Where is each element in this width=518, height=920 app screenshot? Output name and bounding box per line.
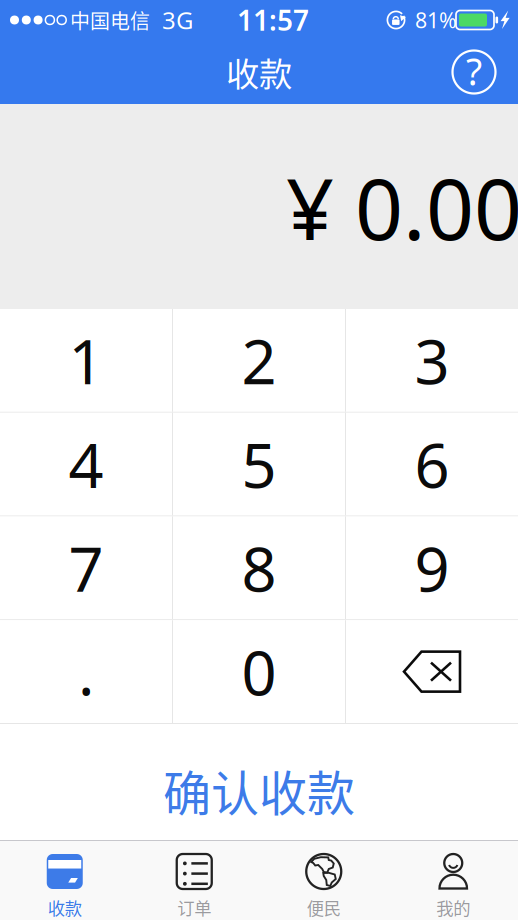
staticText: 4 xyxy=(68,423,103,505)
staticText: 订单 xyxy=(177,895,211,920)
staticText: 便民 xyxy=(307,895,341,920)
staticText: 1 xyxy=(68,320,103,401)
button[interactable]: 9 xyxy=(346,516,518,619)
staticText: 8 xyxy=(241,527,276,609)
button[interactable]: Help xyxy=(443,41,505,103)
button[interactable]: 确认收款 xyxy=(0,724,518,840)
staticText: 3G xyxy=(162,4,193,36)
staticText: 我的 xyxy=(436,895,470,920)
staticText: 确认收款 xyxy=(163,755,355,825)
button[interactable]: 订单 xyxy=(129,841,259,920)
staticText: 7 xyxy=(68,527,103,609)
staticText: 收款 xyxy=(48,895,82,920)
staticText: 0.00 xyxy=(355,152,518,263)
button[interactable]: 我的 xyxy=(388,841,518,920)
staticText: 0 xyxy=(241,631,276,712)
button[interactable]: 8 xyxy=(173,516,345,619)
button[interactable]: 0 xyxy=(173,620,345,723)
staticText: 中国电信 xyxy=(70,5,150,34)
button[interactable]: 4 xyxy=(0,413,172,516)
button[interactable]: 便民 xyxy=(259,841,388,920)
staticText: 6 xyxy=(414,423,449,505)
staticText: . xyxy=(78,631,94,712)
button[interactable]: 收款 xyxy=(0,841,129,920)
button[interactable]: 7 xyxy=(0,516,172,619)
button[interactable]: . xyxy=(0,620,172,723)
staticText: ¥ xyxy=(286,152,334,263)
staticText: 2 xyxy=(241,320,276,401)
button[interactable]: 5 xyxy=(173,413,345,516)
button[interactable]: 6 xyxy=(346,413,518,516)
button[interactable]: 2 xyxy=(173,309,345,412)
button[interactable]: 3 xyxy=(346,309,518,412)
button[interactable] xyxy=(346,620,518,723)
staticText: 11:57 xyxy=(237,1,309,39)
button[interactable]: 1 xyxy=(0,309,172,412)
staticText: 81% xyxy=(415,6,457,34)
staticText: 3 xyxy=(414,320,449,401)
staticText: 收款 xyxy=(226,48,292,96)
staticText: ? xyxy=(466,46,482,96)
staticText: 5 xyxy=(241,423,276,505)
staticText: 9 xyxy=(414,527,449,609)
